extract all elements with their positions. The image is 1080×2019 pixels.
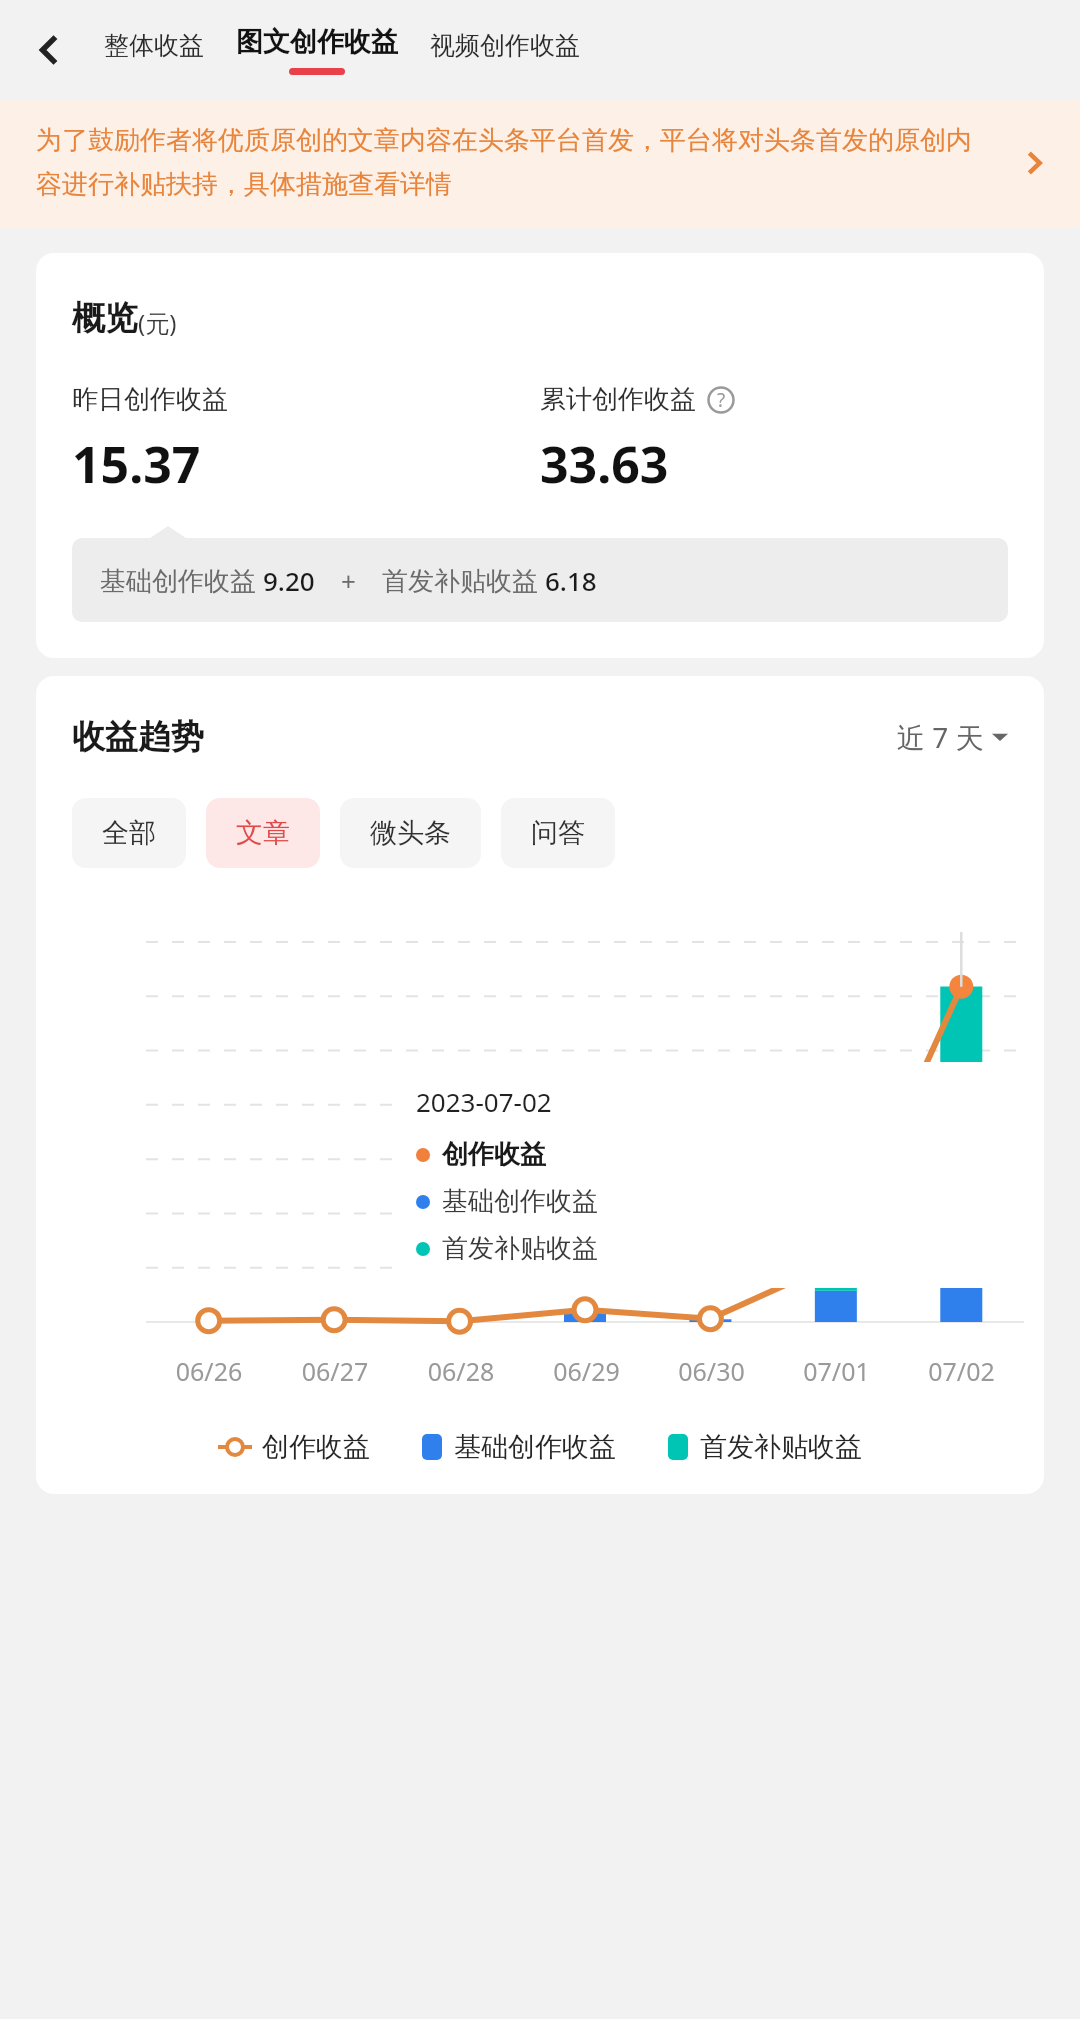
button[interactable]: 微头条: [340, 798, 481, 868]
staticText: 06/28: [398, 1354, 524, 1388]
staticText: 基础创作收益: [454, 1430, 616, 1464]
staticText: 07/01: [774, 1354, 899, 1388]
other: Details: [1014, 143, 1054, 183]
staticText: 9.20: [263, 563, 315, 598]
button[interactable]: 视频创作收益: [426, 30, 584, 70]
staticText: 06/26: [146, 1354, 272, 1388]
staticText: 视频创作收益: [430, 30, 580, 61]
staticText: 6.18: [545, 563, 597, 598]
button[interactable]: 图文创作收益: [232, 25, 402, 75]
staticText: 首发补贴收益: [700, 1430, 862, 1464]
button[interactable]: 近 7 天: [897, 718, 1008, 756]
staticText: 基础创作收益: [442, 1185, 598, 1218]
staticText: 首发补贴收益: [442, 1232, 598, 1265]
staticText: 文章: [236, 816, 290, 850]
staticText: 为了鼓励作者将优质原创的文章内容在头条平台首发，平台将对头条首发的原创内容进行补…: [36, 124, 996, 201]
staticText: 创作收益: [442, 1138, 546, 1171]
button[interactable]: Back: [18, 18, 82, 82]
staticText: 06/30: [649, 1354, 774, 1388]
staticText: 近 7 天: [897, 718, 984, 756]
staticText: 2023-07-02: [416, 1084, 552, 1119]
staticText: 收益趋势: [72, 716, 204, 758]
staticText: +: [341, 563, 356, 598]
button[interactable]: 问答: [501, 798, 615, 868]
staticText: 06/29: [524, 1354, 649, 1388]
staticText: 基础创作收益: [100, 562, 263, 598]
staticText: 微头条: [370, 816, 451, 850]
staticText: 全部: [102, 816, 156, 850]
staticText: 首发补贴收益: [382, 562, 545, 598]
button[interactable]: 首发补贴收益: [668, 1430, 862, 1464]
staticText: 33.63: [540, 430, 669, 498]
button[interactable]: 创作收益: [218, 1430, 370, 1464]
button[interactable]: Help: [706, 385, 736, 415]
staticText: 创作收益: [262, 1430, 370, 1464]
button[interactable]: 整体收益: [100, 30, 208, 70]
staticText: ?: [717, 387, 726, 413]
staticText: 图文创作收益: [236, 25, 398, 59]
staticText: 累计创作收益: [540, 383, 696, 416]
staticText: 问答: [531, 816, 585, 850]
button[interactable]: 基础创作收益: [422, 1430, 616, 1464]
staticText: 概览: [72, 297, 138, 339]
staticText: 整体收益: [104, 30, 204, 61]
staticText: 15.37: [72, 430, 201, 498]
staticText: 06/27: [272, 1354, 398, 1388]
button[interactable]: 全部: [72, 798, 186, 868]
button[interactable]: 概览: [36, 253, 1044, 658]
staticText: 07/02: [899, 1354, 1024, 1388]
staticText: (元): [138, 306, 177, 339]
staticText: 昨日创作收益: [72, 383, 228, 416]
button[interactable]: 为了鼓励作者将优质原创的文章内容在头条平台首发，平台将对头条首发的原创内容进行补…: [36, 124, 1054, 201]
button[interactable]: 文章: [206, 798, 320, 868]
